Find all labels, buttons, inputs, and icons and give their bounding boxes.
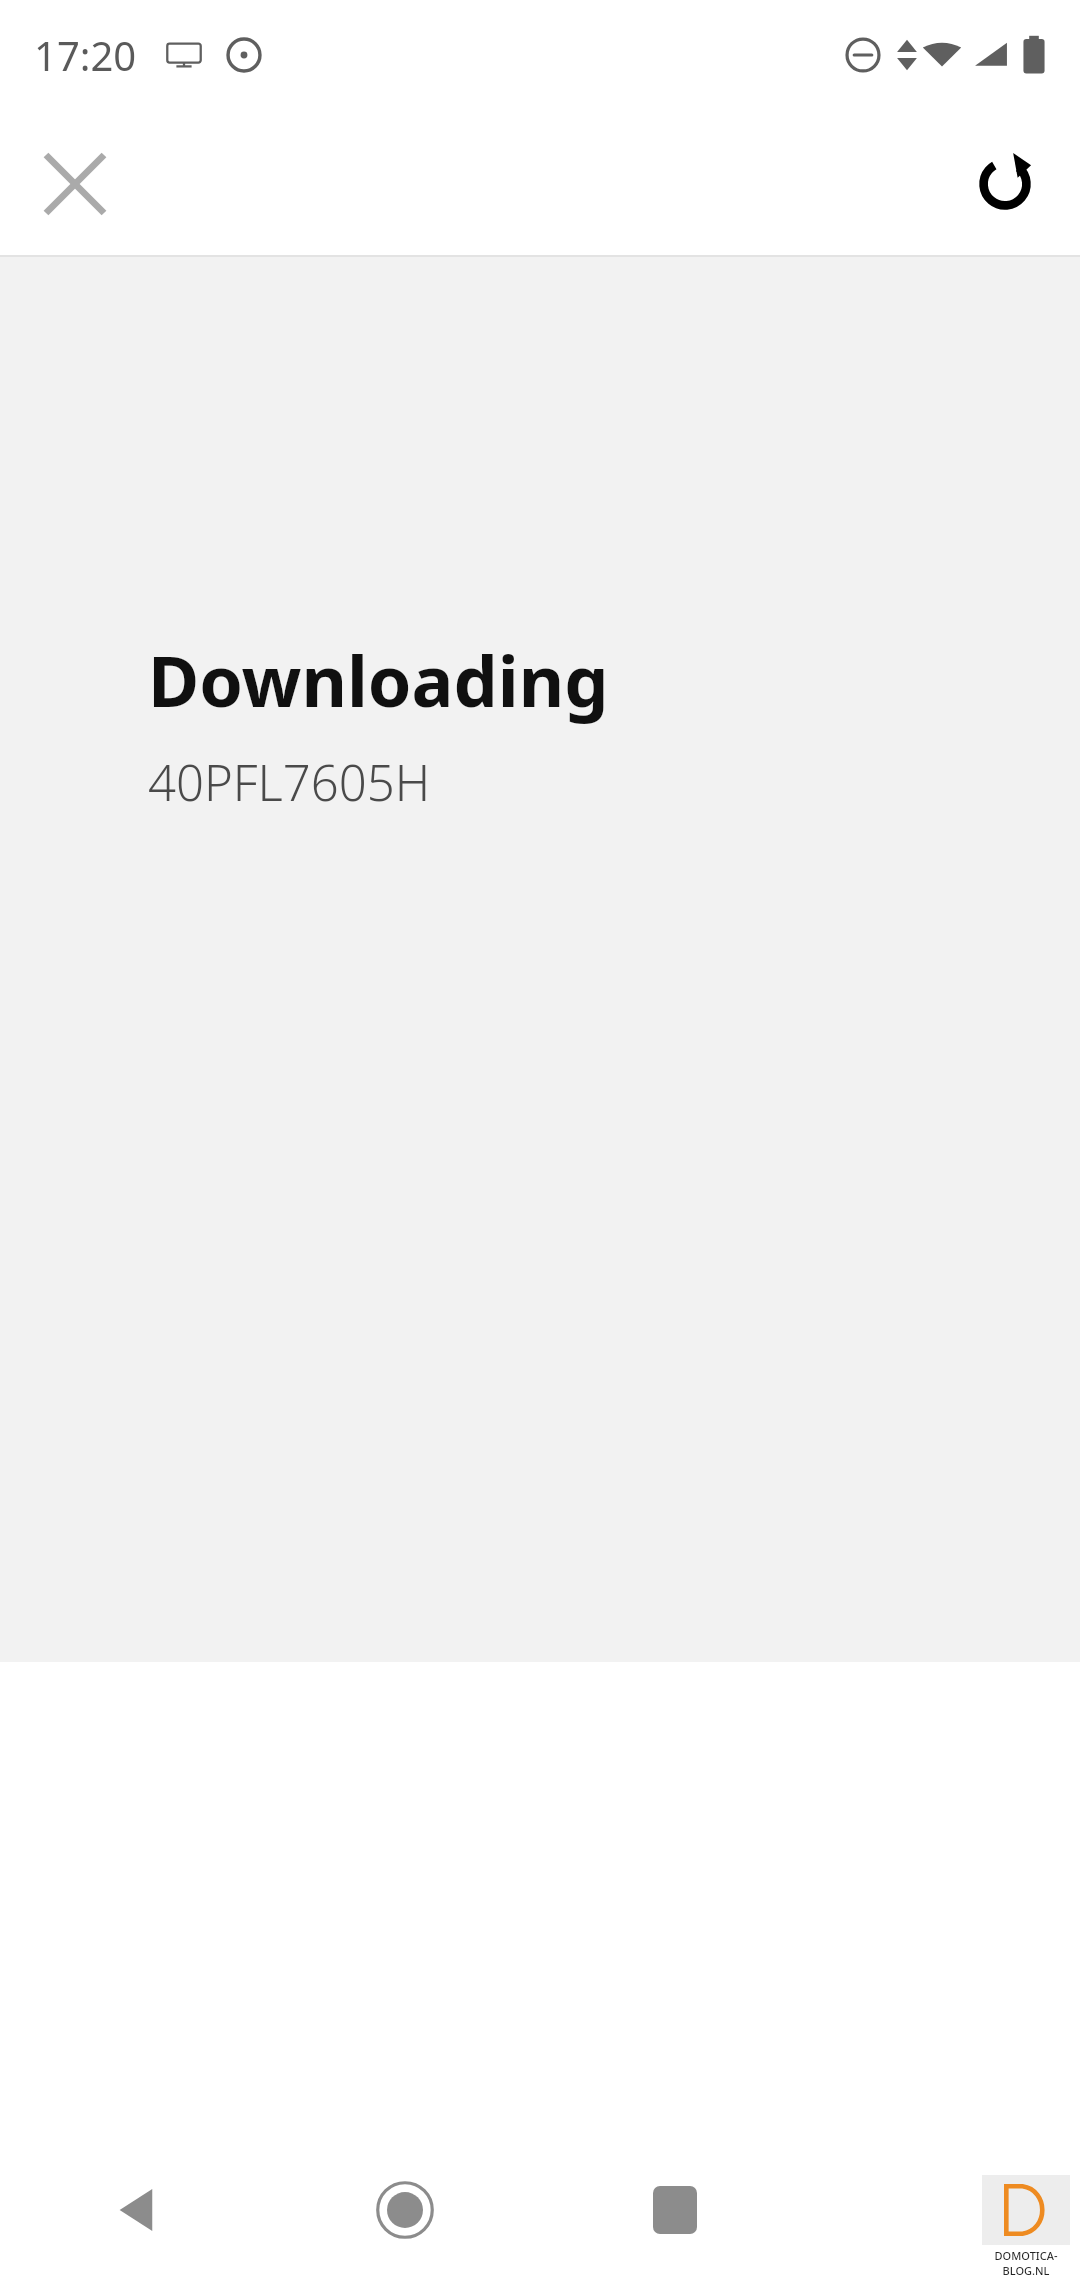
staticText: 17:20 xyxy=(34,28,137,82)
button[interactable]: Back xyxy=(0,2140,270,2280)
button[interactable]: Close xyxy=(20,129,130,239)
button[interactable]: Refresh xyxy=(950,129,1060,239)
button[interactable]: Home xyxy=(270,2140,540,2280)
staticText: DOMOTICA-BLOG.NL xyxy=(978,2248,1074,2278)
staticText: Downloading xyxy=(148,632,609,727)
staticText: 40PFL7605H xyxy=(148,749,431,816)
button[interactable]: Recent apps xyxy=(540,2140,810,2280)
